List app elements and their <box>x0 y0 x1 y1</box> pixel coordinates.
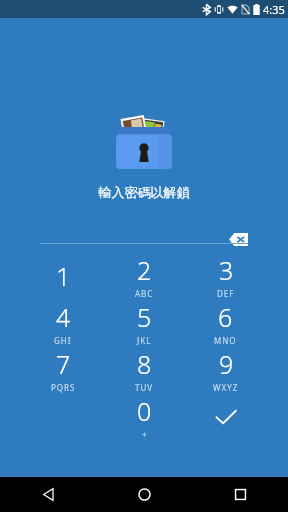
button[interactable]: 4 <box>22 299 104 346</box>
button[interactable]: 2 <box>104 252 185 299</box>
button[interactable]: Recent apps <box>192 477 288 512</box>
staticText: 8 <box>137 347 152 381</box>
staticText: WXYZ <box>213 382 239 393</box>
staticText: 5 <box>137 300 152 334</box>
staticText: 3 <box>219 253 234 287</box>
button[interactable]: 1 <box>22 252 104 299</box>
staticText: 2 <box>137 253 152 287</box>
button[interactable]: 8 <box>104 346 185 393</box>
staticText: MNO <box>214 335 237 346</box>
staticText: 9 <box>219 347 234 381</box>
staticText: 4:35 <box>263 2 285 17</box>
button[interactable]: Confirm <box>185 393 266 440</box>
staticText: 6 <box>218 300 233 334</box>
button[interactable]: 3 <box>185 252 266 299</box>
button[interactable]: Home <box>96 477 192 512</box>
staticText: GHI <box>54 335 72 346</box>
staticText: DEF <box>217 288 235 299</box>
button[interactable]: 9 <box>185 346 266 393</box>
button[interactable]: Back <box>0 477 96 512</box>
staticText: ABC <box>135 288 154 299</box>
staticText: TUV <box>135 382 154 393</box>
button[interactable]: 0 <box>104 393 185 440</box>
staticText: 4 <box>56 300 71 334</box>
staticText: + <box>142 429 148 440</box>
staticText: 1 <box>56 259 71 293</box>
button[interactable]: 7 <box>22 346 104 393</box>
button[interactable]: Backspace <box>222 224 254 254</box>
staticText: 0 <box>137 394 152 428</box>
staticText: PQRS <box>51 382 76 393</box>
button[interactable]: 5 <box>104 299 185 346</box>
staticText: 7 <box>56 347 71 381</box>
staticText: 輸入密碼以解鎖 <box>0 184 288 200</box>
staticText: JKL <box>137 335 152 346</box>
button[interactable]: 6 <box>185 299 266 346</box>
